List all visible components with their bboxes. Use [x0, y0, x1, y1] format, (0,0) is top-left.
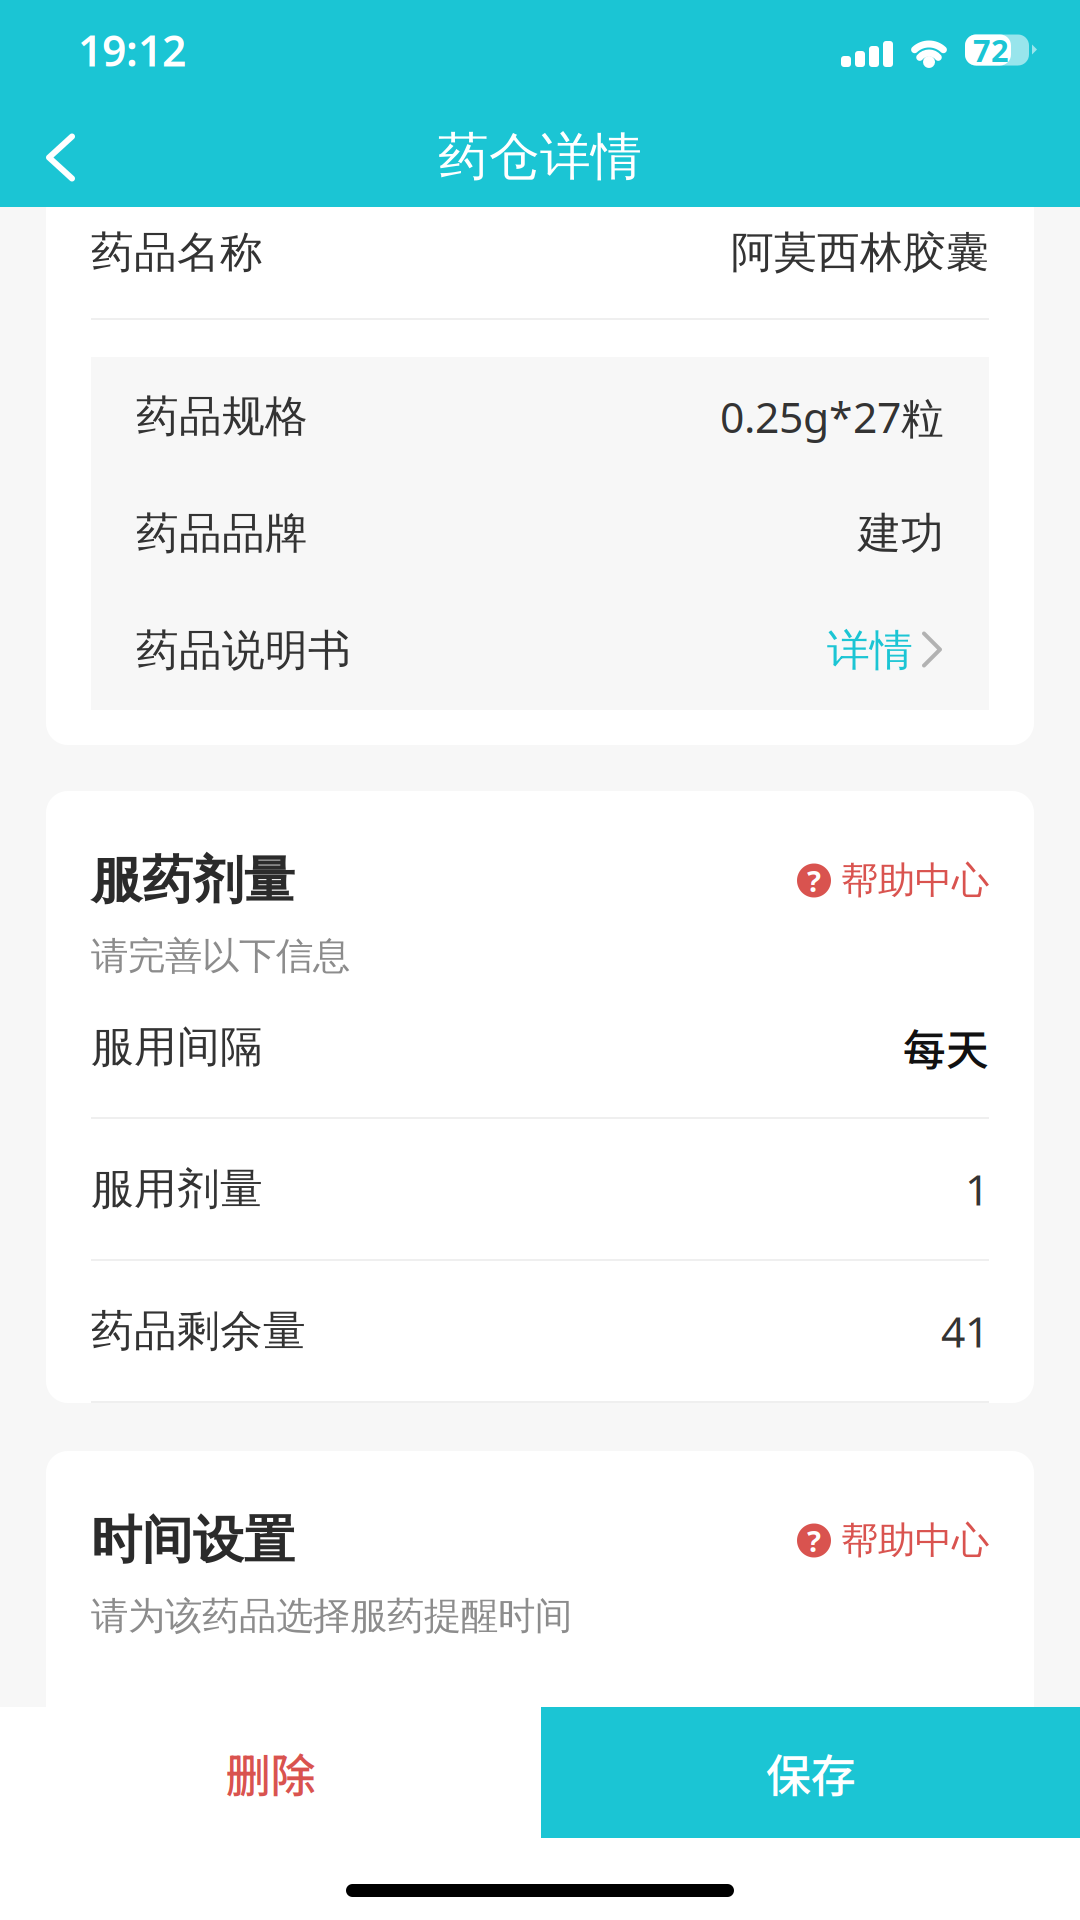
staticText: 19:12	[78, 22, 186, 78]
button[interactable]: ?	[797, 858, 989, 903]
staticText: 0.25g*27粒	[720, 388, 944, 445]
staticText: 41	[941, 1303, 989, 1359]
button[interactable]: Back	[43, 124, 77, 182]
staticText: 72	[973, 30, 1009, 70]
staticText: 药品说明书	[136, 624, 351, 677]
staticText: 保存	[765, 1740, 855, 1805]
staticText: 详情	[827, 624, 913, 677]
staticText: 1	[965, 1161, 989, 1217]
button[interactable]: 保存	[541, 1707, 1080, 1838]
staticText: 药品规格	[136, 390, 308, 443]
staticText: 阿莫西林胶囊	[731, 226, 989, 279]
staticText: 建功	[858, 507, 944, 560]
staticText: 删除	[225, 1740, 315, 1805]
staticText: ?	[807, 861, 821, 900]
staticText: 药仓详情	[438, 126, 642, 188]
button[interactable]: 删除	[0, 1707, 541, 1838]
staticText: 药品名称	[91, 226, 263, 279]
staticText: 帮助中心	[841, 858, 989, 903]
button[interactable]: ?	[797, 1518, 989, 1563]
staticText: 药品剩余量	[91, 1305, 306, 1357]
staticText: 帮助中心	[841, 1518, 989, 1563]
staticText: ?	[807, 1521, 821, 1560]
staticText: 服用间隔	[91, 1021, 263, 1073]
button[interactable]: 药品说明书	[136, 592, 944, 709]
staticText: 药品品牌	[136, 507, 308, 560]
staticText: 每天	[903, 1016, 989, 1078]
staticText: 请为该药品选择服药提醒时间	[91, 1593, 572, 1639]
staticText: 服药剂量	[91, 849, 295, 912]
staticText: 服用剂量	[91, 1163, 263, 1215]
staticText: 时间设置	[91, 1509, 295, 1572]
staticText: 请完善以下信息	[91, 933, 350, 979]
